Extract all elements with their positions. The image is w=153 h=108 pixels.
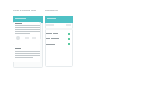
- button[interactable]: [45, 41, 73, 46]
- button[interactable]: [13, 16, 43, 68]
- staticText: Preferences: [45, 9, 58, 12]
- button[interactable]: [16, 36, 20, 40]
- button[interactable]: [45, 16, 73, 67]
- button[interactable]: [13, 22, 40, 44]
- staticText: Cards & stacked rows: [13, 9, 37, 12]
- button[interactable]: [13, 44, 40, 62]
- button[interactable]: [45, 31, 73, 36]
- button[interactable]: [45, 36, 73, 41]
